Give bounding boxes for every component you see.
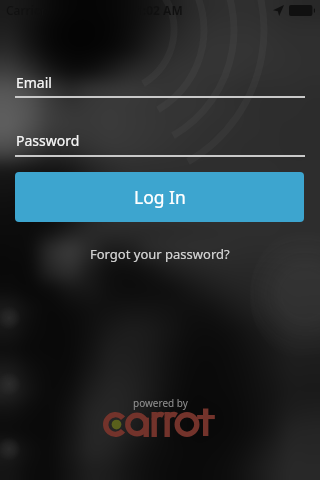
other: Location (273, 5, 284, 16)
button[interactable]: Log In (15, 172, 304, 222)
button[interactable]: Forgot your password? (82, 242, 238, 266)
staticText: 1:02 AM (136, 2, 183, 18)
staticText: Forgot your password? (90, 245, 230, 263)
staticText: powered by (133, 396, 188, 410)
staticText: Password (16, 131, 80, 150)
other: Battery (289, 5, 315, 16)
staticText: Log In (134, 185, 186, 209)
staticText: Email (16, 73, 52, 92)
staticText: Carrier (6, 2, 46, 18)
